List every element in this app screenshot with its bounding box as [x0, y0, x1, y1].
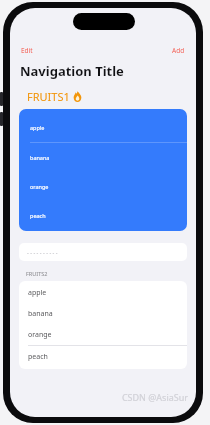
- staticText: Add: [172, 46, 185, 55]
- button[interactable]: peach: [19, 201, 187, 230]
- staticText: Edit: [21, 46, 33, 55]
- staticText: CSDN @AsiaSur: [121, 391, 188, 403]
- staticText: orange: [28, 330, 52, 340]
- staticText: peach: [30, 212, 46, 219]
- button[interactable]: apple: [19, 113, 187, 143]
- other: Dynamic Island: [73, 13, 135, 30]
- staticText: - - - - - - - - - -: [27, 249, 58, 256]
- staticText: FRUITS1: [27, 89, 70, 104]
- staticText: FRUITS2: [26, 270, 48, 277]
- staticText: Navigation Title: [20, 62, 124, 80]
- button[interactable]: Add: [170, 44, 187, 57]
- button[interactable]: banana: [19, 303, 187, 324]
- button[interactable]: Edit: [19, 44, 35, 57]
- staticText: peach: [28, 352, 48, 362]
- button[interactable]: banana: [19, 143, 187, 172]
- button[interactable]: orange: [19, 172, 187, 201]
- staticText: orange: [30, 183, 49, 190]
- button[interactable]: orange: [19, 324, 187, 346]
- staticText: banana: [30, 154, 50, 161]
- other: Volume up: [0, 92, 3, 106]
- button[interactable]: apple: [19, 282, 187, 303]
- staticText: banana: [28, 309, 53, 319]
- staticText: apple: [28, 288, 47, 298]
- button[interactable]: peach: [19, 346, 187, 367]
- other: Volume down: [0, 112, 3, 126]
- staticText: apple: [30, 124, 45, 131]
